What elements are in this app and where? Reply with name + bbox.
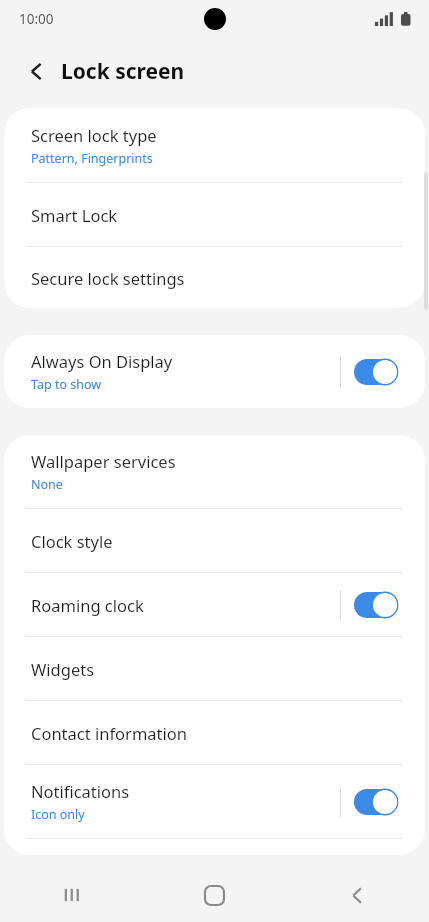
- staticText: Clock style: [31, 530, 113, 552]
- button[interactable]: Home: [143, 868, 286, 922]
- staticText: Pattern, Fingerprints: [31, 150, 153, 167]
- staticText: None: [31, 476, 63, 493]
- button[interactable]: Widgets: [4, 637, 425, 700]
- staticText: Smart Lock: [31, 204, 118, 226]
- staticText: Notifications: [31, 780, 130, 802]
- button[interactable]: Recent apps: [0, 868, 143, 922]
- button[interactable]: Toggle: [354, 592, 398, 618]
- staticText: 10:00: [19, 10, 54, 28]
- button[interactable]: Secure lock settings: [4, 247, 425, 308]
- staticText: Wallpaper services: [31, 450, 176, 472]
- staticText: Lock screen: [61, 57, 185, 86]
- button[interactable]: Back: [14, 49, 58, 93]
- button[interactable]: Notifications: [4, 765, 425, 838]
- button[interactable]: Toggle: [354, 359, 398, 385]
- staticText: Icon only: [31, 806, 85, 823]
- button[interactable]: Screen lock type: [4, 108, 425, 182]
- staticText: Contact information: [31, 722, 187, 744]
- staticText: Tap to show: [31, 376, 102, 393]
- button[interactable]: Wallpaper services: [4, 435, 425, 508]
- button[interactable]: Smart Lock: [4, 183, 425, 246]
- staticText: Roaming clock: [31, 594, 144, 616]
- staticText: Always On Display: [31, 350, 173, 372]
- staticText: Secure lock settings: [31, 267, 185, 289]
- button[interactable]: Roaming clock: [4, 573, 425, 636]
- staticText: Widgets: [31, 658, 95, 680]
- button[interactable]: Toggle: [354, 789, 398, 815]
- button[interactable]: Back: [286, 868, 429, 922]
- button[interactable]: Clock style: [4, 509, 425, 572]
- staticText: Screen lock type: [31, 124, 157, 146]
- button[interactable]: Always On Display: [4, 335, 425, 408]
- button[interactable]: Contact information: [4, 701, 425, 764]
